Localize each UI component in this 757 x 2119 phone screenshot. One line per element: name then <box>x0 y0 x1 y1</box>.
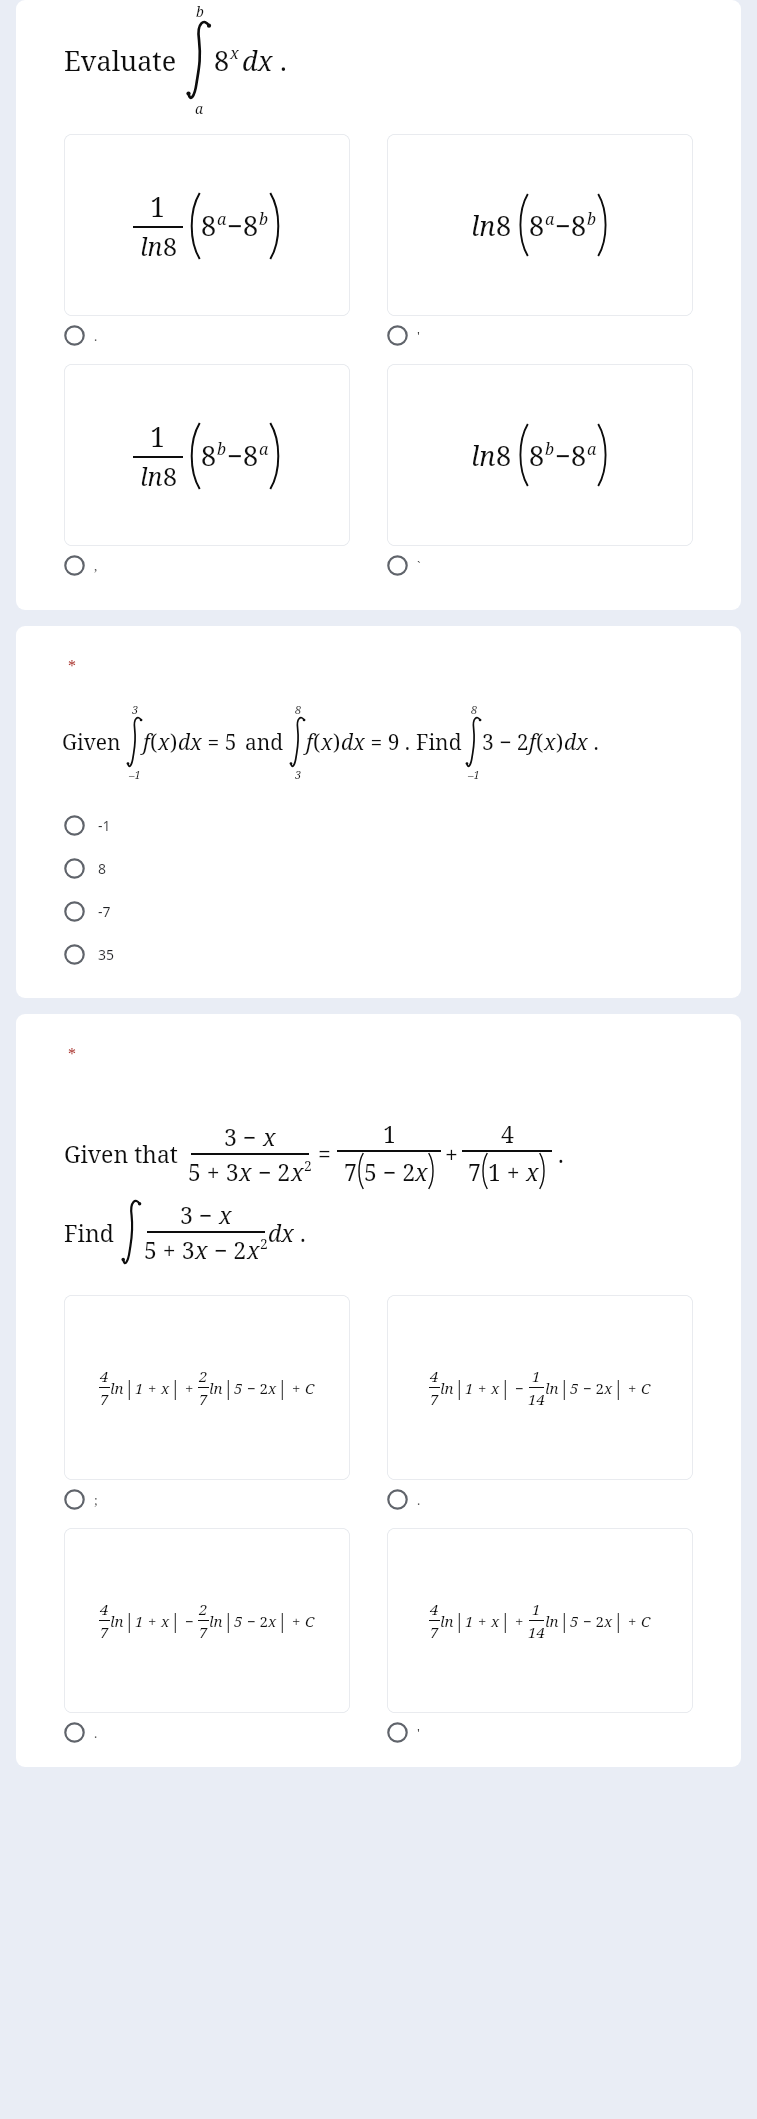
staticText: | <box>559 1608 570 1634</box>
button[interactable]: Option 4 <box>387 555 693 576</box>
button[interactable]: 8 <box>64 847 711 890</box>
staticText: − 2 <box>579 1378 604 1398</box>
staticText: 1 <box>135 1378 144 1398</box>
staticText: ; <box>94 1491 98 1509</box>
staticText: C <box>305 1611 315 1631</box>
staticText: , <box>94 557 98 575</box>
button[interactable]: Option 3 <box>64 1722 350 1743</box>
staticText: 1 <box>465 1378 474 1398</box>
staticText: 5 <box>234 1378 243 1398</box>
button[interactable]: -1 <box>64 804 711 847</box>
staticText: 7 <box>100 1389 109 1409</box>
button[interactable]: Option 1 <box>64 134 350 316</box>
staticText: 3 − <box>224 1121 263 1152</box>
staticText: x <box>491 1378 500 1398</box>
staticText: 1 <box>383 1118 396 1149</box>
staticText: b <box>259 208 269 230</box>
staticText: 8 <box>163 459 177 493</box>
staticText: ln <box>110 1611 124 1631</box>
staticText: x <box>604 1611 613 1631</box>
staticText: b <box>545 438 555 460</box>
button[interactable]: Option 1 <box>64 1295 350 1480</box>
button[interactable]: 35 <box>64 933 711 976</box>
staticText: 4 <box>100 1599 109 1619</box>
staticText: ' <box>417 1724 420 1742</box>
staticText: − <box>555 207 571 244</box>
button[interactable]: Option 4 <box>387 1528 693 1713</box>
button[interactable]: -7 <box>64 890 711 933</box>
staticText: 1 <box>465 1611 474 1631</box>
button[interactable]: Option 3 <box>64 364 350 546</box>
staticText: 2 <box>304 1156 312 1175</box>
staticText: 5 <box>570 1378 579 1398</box>
staticText: * <box>68 1044 77 1066</box>
staticText: 8 <box>163 229 177 263</box>
staticText: dx <box>564 728 588 757</box>
staticText: –1 <box>129 767 141 782</box>
staticText: 35 <box>98 945 115 964</box>
staticText: + <box>144 1611 161 1631</box>
staticText: 2 <box>199 1366 208 1386</box>
staticText: x <box>268 1611 277 1631</box>
staticText: x <box>219 1199 232 1230</box>
staticText: | <box>559 1375 570 1401</box>
staticText: a <box>545 208 555 230</box>
button[interactable]: Option 2 <box>387 134 693 316</box>
staticText: –1 <box>468 767 480 782</box>
staticText: Evaluate <box>64 42 177 79</box>
staticText: 8 <box>571 437 587 474</box>
staticText: ln <box>545 1378 559 1398</box>
staticText: Find <box>416 728 462 757</box>
staticText: ln <box>209 1378 223 1398</box>
staticText: . <box>417 1491 421 1509</box>
staticText: 8 <box>243 437 259 474</box>
staticText: = 9 . <box>365 728 411 757</box>
staticText: x <box>291 1156 304 1187</box>
staticText: ( <box>536 728 544 757</box>
staticText: | <box>277 1375 288 1401</box>
button[interactable]: Option 4 <box>387 1722 693 1743</box>
staticText: = 5 <box>202 728 237 757</box>
staticText: 1 <box>150 188 166 225</box>
button[interactable]: Option 1 <box>64 325 350 346</box>
button[interactable]: Option 2 <box>387 1295 693 1480</box>
staticText: x <box>544 728 556 757</box>
staticText: = <box>318 1138 331 1169</box>
button[interactable]: Option 3 <box>64 1528 350 1713</box>
staticText: 7 <box>199 1622 208 1642</box>
staticText: 7 <box>468 1156 481 1187</box>
button[interactable]: Option 2 <box>387 1489 693 1510</box>
staticText: ' <box>417 327 420 345</box>
staticText: | <box>500 1375 511 1401</box>
staticText: | <box>170 1375 181 1401</box>
staticText: 2 <box>199 1599 208 1619</box>
staticText: ln <box>140 459 163 493</box>
staticText: ln <box>471 207 496 244</box>
button[interactable]: Option 1 <box>64 1489 350 1510</box>
staticText: f <box>306 728 313 757</box>
staticText: 1 <box>135 1611 144 1631</box>
staticText: 3 <box>132 702 139 717</box>
button[interactable]: Option 2 <box>387 325 693 346</box>
staticText: ( <box>313 728 321 757</box>
staticText: + <box>144 1378 161 1398</box>
staticText: | <box>454 1375 465 1401</box>
staticText: ln <box>440 1378 454 1398</box>
button[interactable]: Option 3 <box>64 555 350 576</box>
staticText: a <box>217 208 227 230</box>
staticText: 5 <box>570 1611 579 1631</box>
staticText: * <box>68 656 77 678</box>
staticText: 14 <box>528 1622 545 1642</box>
staticText: dx <box>341 728 365 757</box>
button[interactable]: Option 4 <box>387 364 693 546</box>
staticText: + <box>624 1378 641 1398</box>
staticText: 1 <box>150 418 166 455</box>
staticText: 7 <box>100 1622 109 1642</box>
staticText: Given <box>62 728 121 757</box>
staticText: 8 <box>529 437 545 474</box>
staticText: x <box>161 1378 170 1398</box>
staticText: + <box>288 1378 305 1398</box>
staticText: f <box>143 728 150 757</box>
staticText: 4 <box>100 1366 109 1386</box>
staticText: 8 <box>98 859 107 878</box>
